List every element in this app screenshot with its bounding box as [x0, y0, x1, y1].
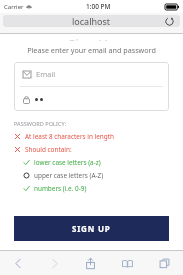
- button[interactable]: Back: [0, 251, 36, 275]
- button[interactable]: Reload: [164, 16, 175, 27]
- staticText: Please enter your email and password: [27, 45, 156, 55]
- staticText: lower case letters (a-z): [34, 158, 101, 167]
- staticText: Sign Up: [68, 35, 116, 41]
- staticText: numbers (i.e. 0-9): [34, 184, 87, 193]
- button[interactable]: localhost: [3, 15, 180, 27]
- button[interactable]: Bookmarks: [109, 251, 146, 275]
- staticText: localhost: [72, 15, 111, 27]
- staticText: PASSWORD POLICY:: [14, 120, 67, 128]
- staticText: SIGN UP: [72, 223, 111, 234]
- staticText: 1:00 PM: [86, 2, 111, 11]
- staticText: Should contain:: [25, 145, 72, 154]
- staticText: At least 8 characters in length: [25, 132, 114, 141]
- button[interactable]: Email: [14, 62, 169, 86]
- button[interactable]: Forward: [36, 251, 72, 275]
- staticText: Email: [36, 69, 56, 79]
- button[interactable]: [14, 87, 169, 111]
- staticText: Carrier: [4, 3, 24, 11]
- button[interactable]: SIGN UP: [14, 216, 169, 241]
- staticText: upper case letters (A-Z): [34, 171, 104, 180]
- button[interactable]: Share: [72, 251, 109, 275]
- button[interactable]: Tabs: [146, 251, 183, 275]
